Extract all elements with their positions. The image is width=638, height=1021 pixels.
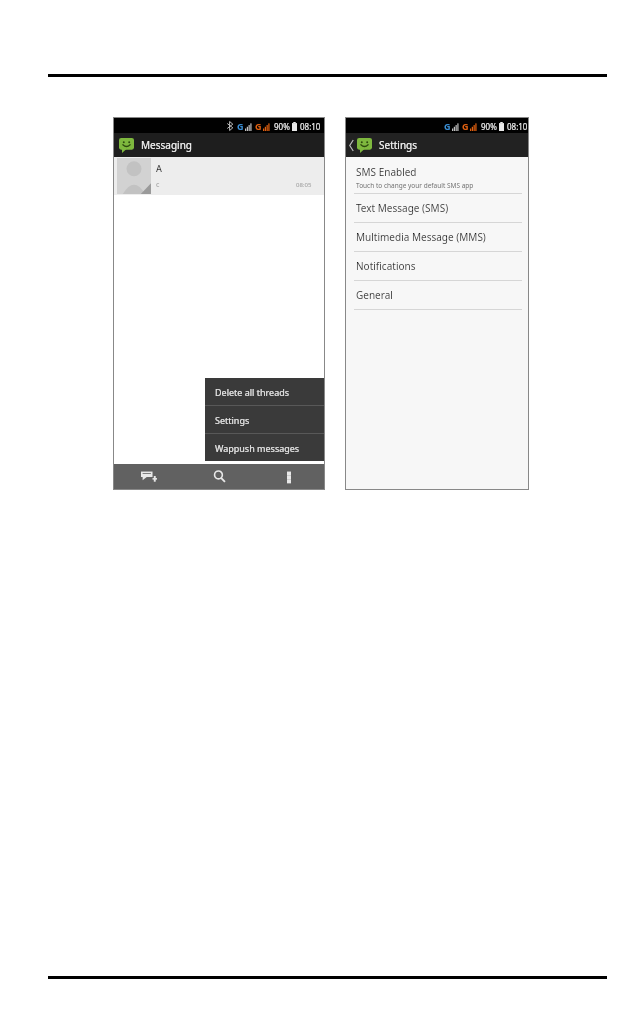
button[interactable]: New message bbox=[114, 464, 184, 489]
button[interactable]: Multimedia Message (MMS) bbox=[346, 223, 528, 251]
staticText: 08:10 bbox=[507, 121, 528, 132]
button[interactable]: Notifications bbox=[346, 252, 528, 280]
staticText: G bbox=[255, 120, 262, 132]
button[interactable]: Search bbox=[184, 464, 254, 489]
staticText: SMS Enabled bbox=[356, 165, 417, 179]
staticText: Settings bbox=[379, 138, 418, 152]
staticText: A bbox=[156, 162, 162, 174]
button[interactable]: General bbox=[346, 281, 528, 309]
button[interactable]: Text Message (SMS) bbox=[346, 194, 528, 222]
staticText: Notifications bbox=[356, 259, 416, 273]
staticText: Messaging bbox=[141, 138, 192, 152]
button[interactable]: A bbox=[114, 157, 324, 195]
staticText: Wappush messages bbox=[215, 442, 300, 454]
staticText: Multimedia Message (MMS) bbox=[356, 230, 486, 244]
staticText: General bbox=[356, 288, 393, 302]
staticText: G bbox=[237, 120, 244, 132]
staticText: 08:10 bbox=[300, 121, 321, 132]
staticText: Settings bbox=[215, 414, 250, 426]
button[interactable]: Back bbox=[346, 133, 528, 157]
button[interactable]: SMS Enabled bbox=[346, 161, 528, 193]
button[interactable]: Messaging bbox=[114, 133, 324, 157]
button[interactable]: Wappush messages bbox=[205, 434, 324, 461]
other: Back bbox=[349, 140, 354, 151]
staticText: 90% bbox=[274, 121, 290, 132]
staticText: Touch to change your default SMS app bbox=[356, 181, 474, 190]
staticText: G bbox=[444, 120, 451, 132]
button[interactable]: Settings bbox=[205, 406, 324, 433]
staticText: 08:05 bbox=[296, 181, 312, 189]
staticText: 90% bbox=[481, 121, 497, 132]
staticText: c bbox=[156, 180, 160, 190]
button[interactable]: More options bbox=[254, 464, 324, 489]
staticText: Delete all threads bbox=[215, 386, 290, 398]
staticText: Text Message (SMS) bbox=[356, 201, 449, 215]
staticText: G bbox=[462, 120, 469, 132]
button[interactable]: Delete all threads bbox=[205, 378, 324, 405]
